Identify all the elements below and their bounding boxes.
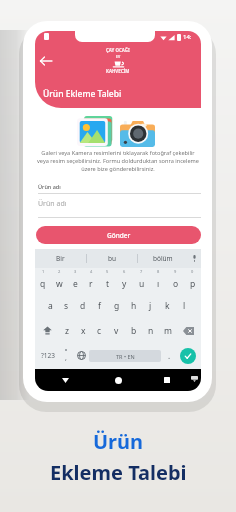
staticText: 2 xyxy=(58,269,61,274)
staticText: Gönder xyxy=(107,231,131,240)
button[interactable]: 2 xyxy=(51,268,67,293)
staticText: Bir xyxy=(56,254,65,263)
staticText: c xyxy=(97,325,102,337)
staticText: l xyxy=(183,300,186,312)
button[interactable]: Voice input xyxy=(188,249,201,268)
button[interactable]: 1 xyxy=(35,268,51,293)
button[interactable]: f xyxy=(91,293,108,318)
button[interactable]: g xyxy=(108,293,125,318)
staticText: r xyxy=(89,278,93,290)
staticText: ÇAY OCAĞI xyxy=(106,47,130,53)
button[interactable]: Gönder xyxy=(36,226,201,244)
staticText: bölüm xyxy=(153,254,173,263)
staticText: EV xyxy=(116,54,121,59)
button[interactable]: TR • EN xyxy=(89,350,161,362)
staticText: g xyxy=(114,300,120,312)
button[interactable]: Recents xyxy=(159,372,175,388)
button[interactable]: b xyxy=(125,318,142,343)
button[interactable]: . xyxy=(161,343,177,368)
staticText: 6 xyxy=(123,269,126,274)
staticText: k xyxy=(165,300,170,312)
staticText: q xyxy=(40,278,46,290)
button[interactable]: a xyxy=(42,293,58,318)
button[interactable]: 4 xyxy=(83,268,99,293)
button[interactable]: Take photo with camera xyxy=(120,118,155,147)
button[interactable]: Done xyxy=(177,343,199,368)
button[interactable]: j xyxy=(142,293,159,318)
staticText: v xyxy=(114,325,119,337)
button[interactable]: 5 xyxy=(99,268,116,293)
staticText: Ürün adı xyxy=(38,183,61,190)
staticText: u xyxy=(139,278,145,290)
button[interactable]: 6 xyxy=(116,268,133,293)
button[interactable]: 8 xyxy=(150,268,167,293)
staticText: Ürün adı xyxy=(38,199,67,209)
button[interactable]: x xyxy=(75,318,91,343)
button[interactable]: m xyxy=(159,318,176,343)
staticText: t xyxy=(106,278,110,290)
staticText: j xyxy=(149,300,152,312)
button[interactable]: Hide keyboard xyxy=(188,373,200,385)
staticText: 4 xyxy=(90,269,93,274)
button[interactable]: Bir xyxy=(35,249,86,268)
button[interactable]: ?123 xyxy=(37,343,59,368)
staticText: Ürün xyxy=(93,428,144,455)
button[interactable]: Comma xyxy=(59,343,73,368)
staticText: , xyxy=(65,353,67,363)
button[interactable]: s xyxy=(58,293,74,318)
button[interactable]: 3 xyxy=(67,268,83,293)
staticText: 8 xyxy=(157,269,160,274)
staticText: Galeri veya Kamera resimlerini tıklayara… xyxy=(37,149,199,173)
button[interactable]: c xyxy=(91,318,108,343)
staticText: 5 xyxy=(106,269,109,274)
button[interactable]: Shift xyxy=(35,318,59,343)
button[interactable]: bu xyxy=(87,249,137,268)
staticText: 3 xyxy=(74,269,77,274)
staticText: 9 xyxy=(174,269,177,274)
staticText: z xyxy=(65,325,69,337)
button[interactable]: h xyxy=(125,293,142,318)
button[interactable]: z xyxy=(59,318,75,343)
staticText: m xyxy=(164,325,172,337)
staticText: TR • EN xyxy=(116,353,135,360)
staticText: y xyxy=(122,278,127,290)
button[interactable]: n xyxy=(142,318,159,343)
staticText: ı xyxy=(157,278,160,290)
staticText: s xyxy=(64,300,69,312)
staticText: 7 xyxy=(140,269,143,274)
button[interactable]: Backspace xyxy=(176,318,201,343)
button[interactable]: l xyxy=(176,293,193,318)
staticText: . xyxy=(168,350,171,361)
button[interactable]: 9 xyxy=(167,268,184,293)
button[interactable]: Change language xyxy=(73,343,89,368)
staticText: n xyxy=(148,325,154,337)
staticText: 1 xyxy=(42,269,45,274)
button[interactable]: k xyxy=(159,293,176,318)
staticText: b xyxy=(131,325,137,337)
staticText: KAHVECİM xyxy=(106,68,130,74)
staticText: e xyxy=(73,278,78,290)
staticText: f xyxy=(98,300,101,312)
staticText: ?123 xyxy=(41,351,55,360)
button[interactable]: d xyxy=(74,293,91,318)
staticText: d xyxy=(80,300,86,312)
staticText: Ekleme Talebi xyxy=(50,459,187,486)
button[interactable]: Home xyxy=(110,372,126,388)
staticText: 0 xyxy=(191,269,194,274)
staticText: x xyxy=(81,325,86,337)
button[interactable]: v xyxy=(108,318,125,343)
staticText: bu xyxy=(108,254,117,263)
staticText: h xyxy=(131,300,137,312)
staticText: w xyxy=(56,278,63,290)
button[interactable]: 7 xyxy=(133,268,150,293)
button[interactable]: bölüm xyxy=(138,249,188,268)
staticText: a xyxy=(48,300,53,312)
staticText: Ürün Ekleme Talebi xyxy=(43,88,122,100)
staticText: 14: xyxy=(183,33,192,41)
button[interactable]: Back xyxy=(37,52,55,70)
button[interactable]: 0 xyxy=(184,268,201,293)
button[interactable]: Choose from gallery xyxy=(76,116,113,147)
button[interactable]: Back xyxy=(57,372,73,388)
staticText: o xyxy=(173,278,179,290)
staticText: p xyxy=(190,278,196,290)
